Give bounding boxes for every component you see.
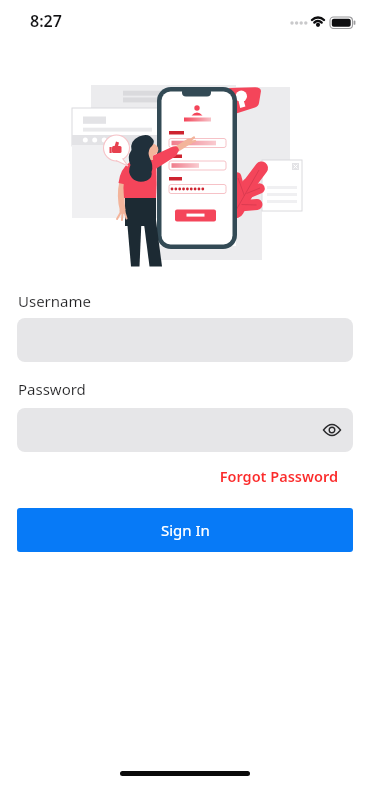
staticText: Sign In [161,520,210,540]
staticText: 8:27 [30,10,62,32]
button[interactable]: Forgot Password [219,466,338,486]
staticText: Password [18,379,86,399]
button[interactable] [17,408,353,452]
staticText: Forgot Password [219,466,338,486]
staticText: Username [18,291,91,311]
button[interactable]: Sign In [17,508,353,552]
button[interactable] [322,422,353,438]
